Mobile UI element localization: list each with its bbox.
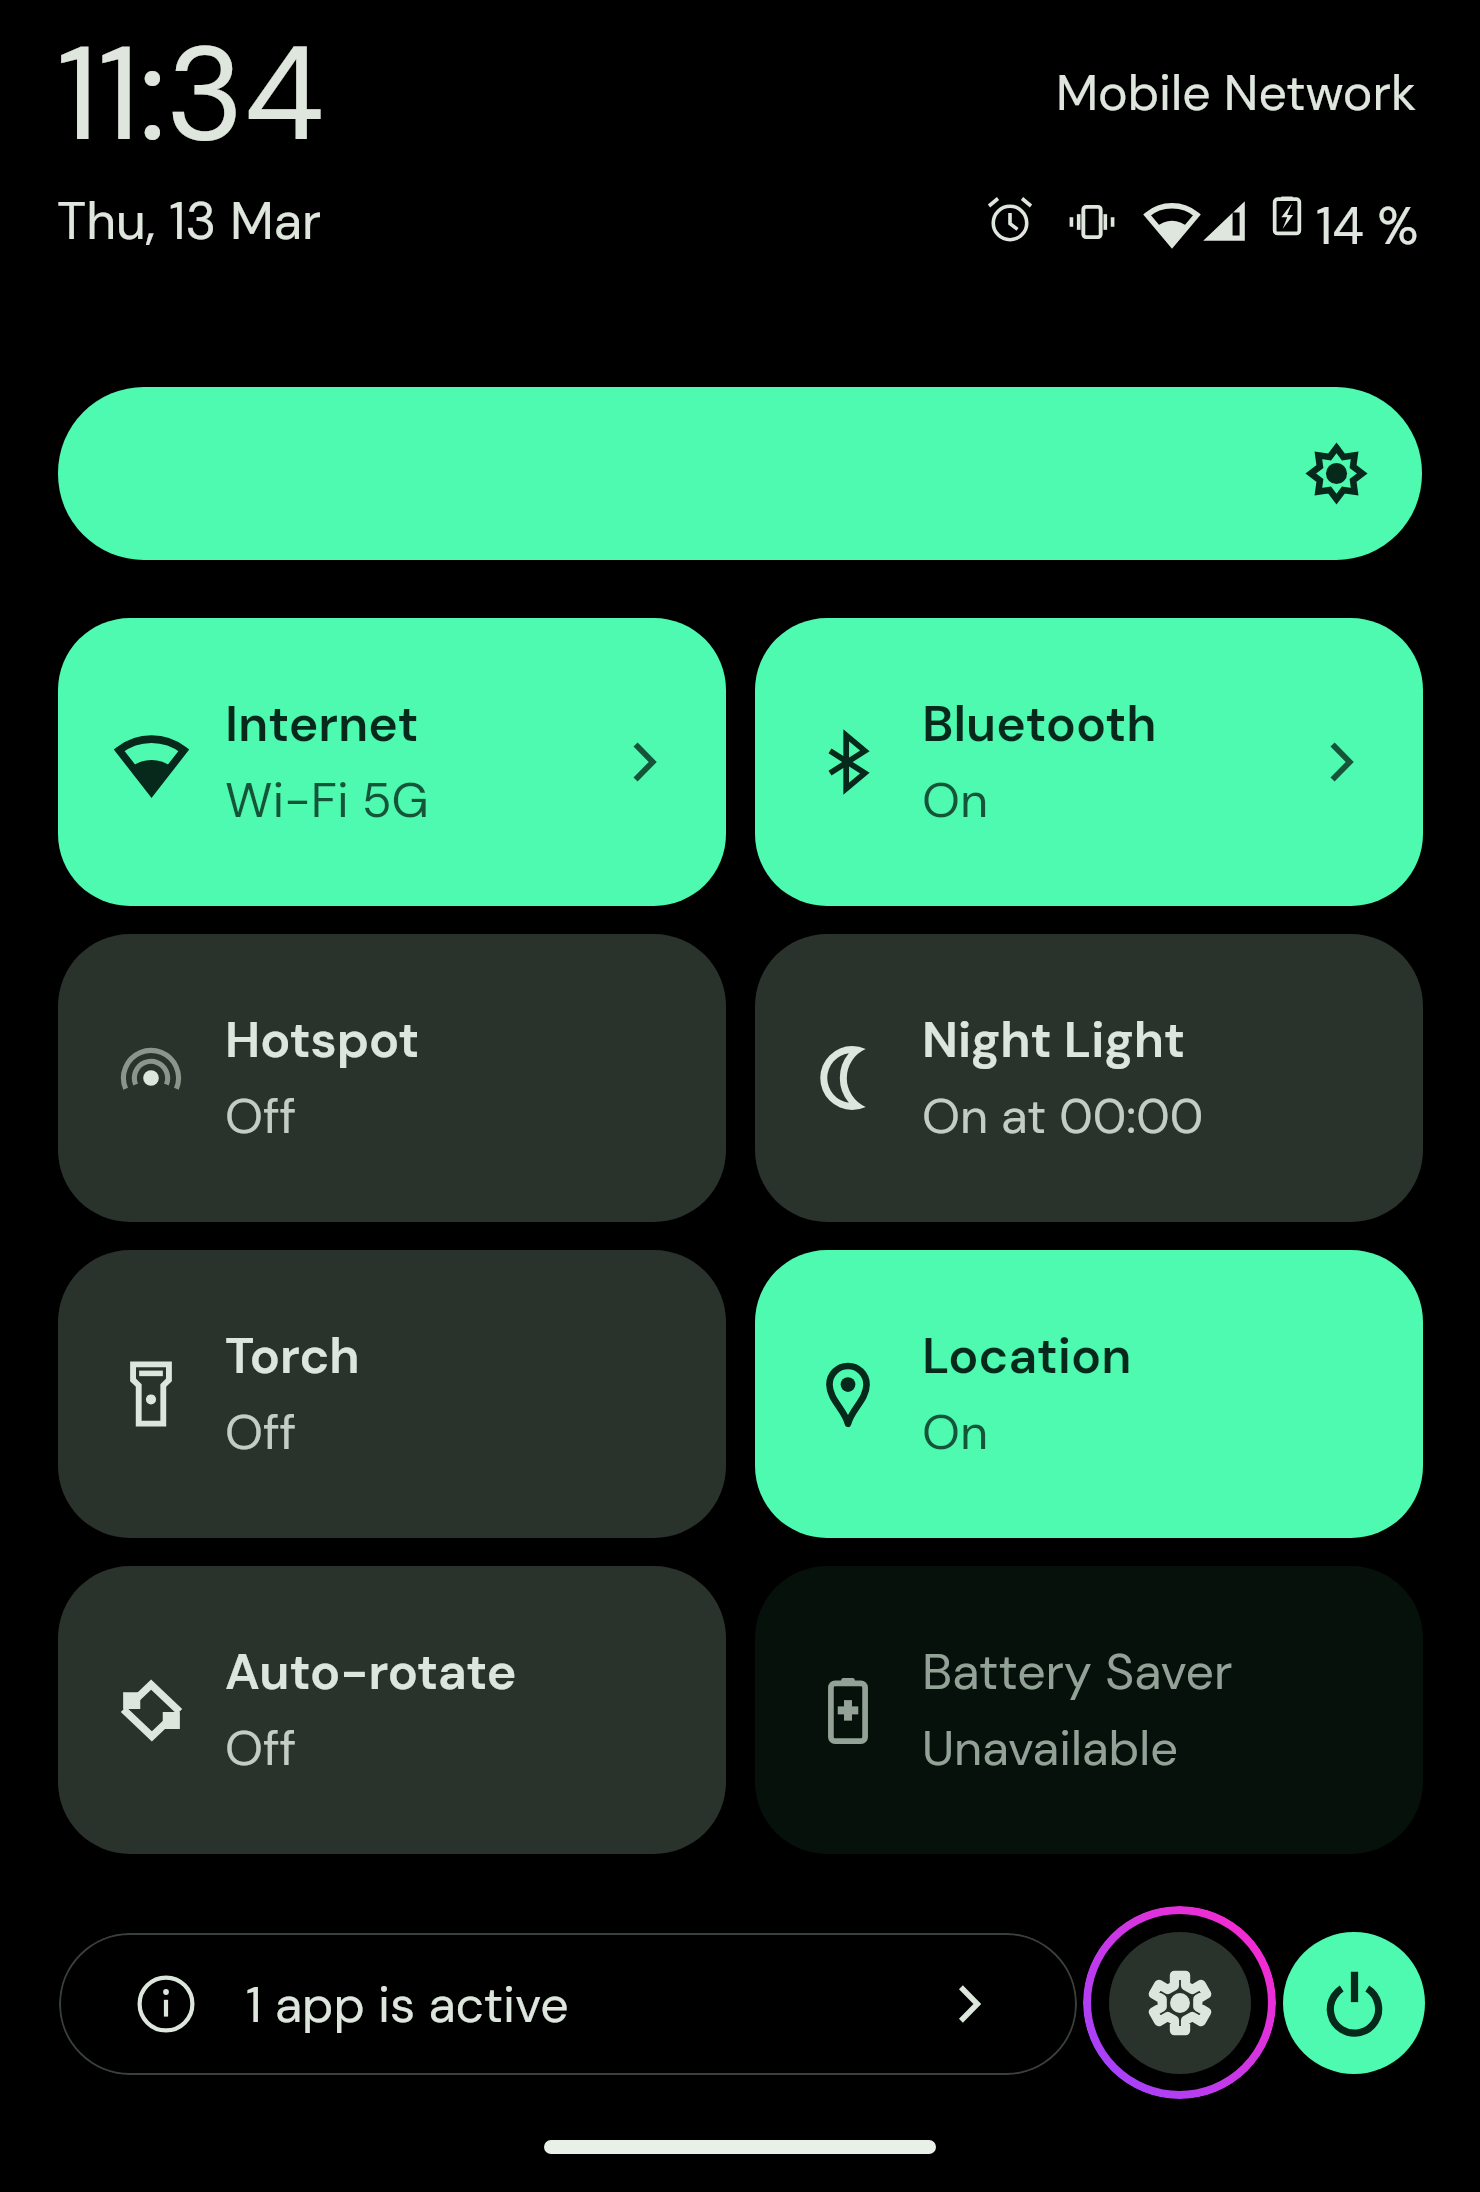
staticText: Thu, 13 Mar: [57, 187, 322, 255]
staticText: Internet: [225, 691, 419, 756]
button[interactable]: 1 app is active: [59, 1933, 1077, 2075]
button[interactable]: Power: [1283, 1932, 1425, 2074]
staticText: Unavailable: [922, 1716, 1178, 1780]
staticText: Bluetooth: [922, 691, 1157, 756]
button[interactable]: Hotspot: [58, 934, 726, 1222]
button[interactable]: Auto-rotate: [58, 1566, 726, 1854]
staticText: On: [922, 768, 989, 832]
button[interactable]: Night Light: [755, 934, 1423, 1222]
button[interactable]: Brightness: [58, 387, 1422, 560]
staticText: Off: [225, 1716, 297, 1780]
button[interactable]: Settings: [1083, 1906, 1276, 2099]
button[interactable]: Bluetooth: [755, 618, 1423, 906]
button[interactable]: Location: [755, 1250, 1423, 1538]
staticText: 14 %: [1316, 192, 1419, 260]
staticText: Location: [922, 1323, 1132, 1388]
button[interactable]: Torch: [58, 1250, 726, 1538]
staticText: On: [922, 1400, 989, 1464]
staticText: Auto-rotate: [225, 1639, 517, 1704]
staticText: 1 app is active: [246, 1972, 569, 2037]
staticText: Night Light: [922, 1007, 1186, 1072]
button[interactable]: Battery Saver: [755, 1566, 1423, 1854]
button[interactable]: Internet: [58, 618, 726, 906]
staticText: Mobile Network: [1056, 60, 1417, 125]
staticText: Off: [225, 1400, 297, 1464]
staticText: Hotspot: [225, 1007, 420, 1072]
staticText: Torch: [225, 1323, 360, 1388]
staticText: 11:34: [57, 8, 325, 180]
staticText: Wi-Fi 5G: [225, 768, 429, 832]
staticText: Off: [225, 1084, 297, 1148]
staticText: Battery Saver: [922, 1639, 1233, 1704]
staticText: On at 00:00: [922, 1084, 1204, 1148]
